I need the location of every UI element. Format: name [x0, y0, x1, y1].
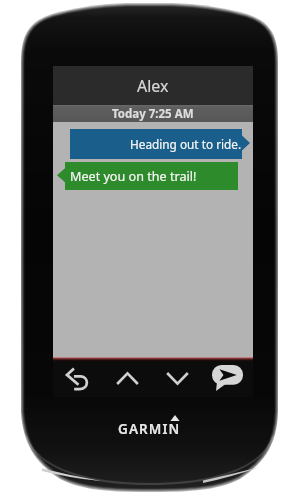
button[interactable]: Scroll up — [102, 361, 152, 397]
button[interactable]: Alex — [53, 66, 253, 105]
staticText: Today 7:25 AM — [112, 106, 194, 122]
staticText: Alex — [137, 75, 169, 97]
staticText: GARMIN — [118, 420, 181, 438]
staticText: Heading out to ride. — [130, 136, 242, 152]
button[interactable]: Reply — [202, 361, 252, 397]
button[interactable]: Back — [53, 361, 103, 397]
staticText: Meet you on the trail! — [70, 168, 197, 185]
button[interactable]: Scroll down — [152, 361, 202, 397]
button[interactable]: Meet you on the trail! — [57, 162, 238, 190]
button[interactable]: Heading out to ride. — [70, 129, 250, 159]
